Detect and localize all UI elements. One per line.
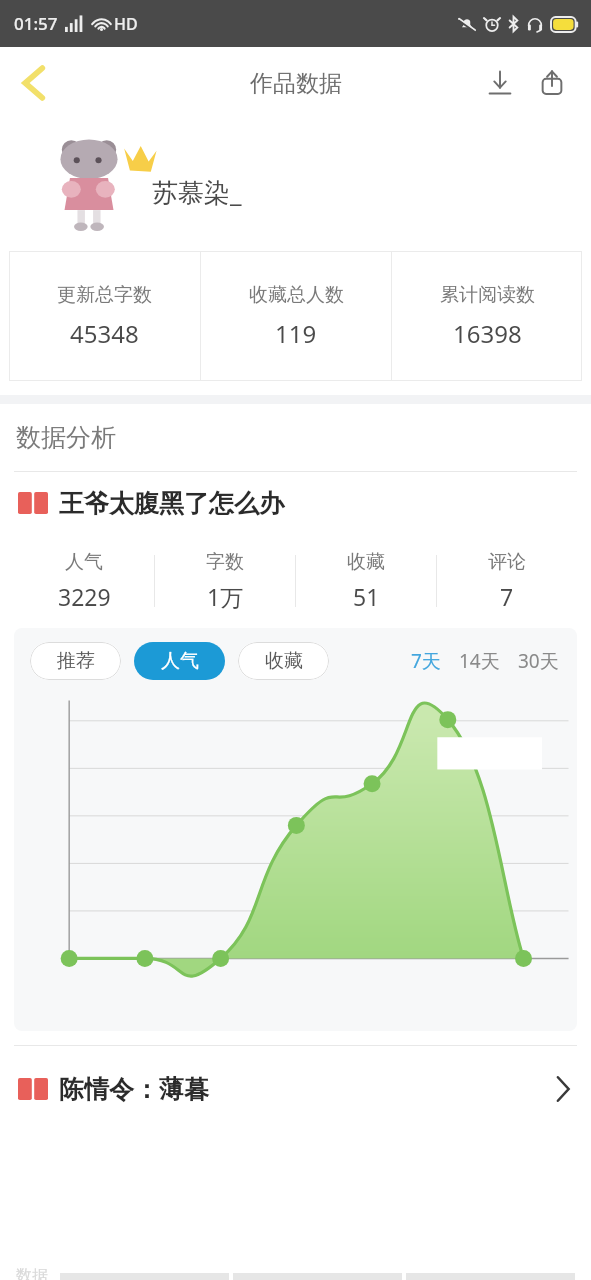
staticText: 7天 [411, 648, 441, 674]
staticText: 51 [353, 581, 380, 612]
staticText: 收藏总人数 [249, 283, 344, 307]
staticText: 7 [500, 581, 514, 612]
staticText: 30天 [518, 648, 559, 674]
staticText: 3229 [58, 581, 111, 612]
staticText: 陈情令：薄暮 [59, 1074, 209, 1105]
staticText: HD [114, 13, 138, 35]
staticText: 字数 [206, 550, 244, 574]
button[interactable]: 推荐 [30, 642, 121, 680]
button[interactable]: 字数 [155, 534, 295, 628]
staticText: 人气 [161, 649, 199, 673]
button[interactable]: 收藏总人数 [201, 251, 391, 381]
button[interactable]: 14天 [457, 642, 502, 680]
button[interactable]: 收藏 [296, 534, 436, 628]
staticText: 收藏 [265, 649, 303, 673]
button[interactable]: Download [477, 60, 523, 106]
staticText: 苏慕染_ [152, 174, 242, 210]
staticText: 收藏 [347, 550, 385, 574]
staticText: 45348 [70, 317, 139, 350]
staticText: 作品数据 [250, 69, 342, 98]
staticText: 人气 [65, 550, 103, 574]
staticText: 累计阅读数 [440, 283, 535, 307]
staticText: 评论 [488, 550, 526, 574]
staticText: 王爷太腹黑了怎么办 [59, 488, 284, 519]
staticText: 更新总字数 [57, 283, 152, 307]
staticText: 数据分析 [16, 422, 116, 453]
button[interactable]: 更新总字数 [9, 251, 200, 381]
button[interactable]: 累计阅读数 [392, 251, 582, 381]
staticText: 16398 [453, 317, 522, 350]
button[interactable]: 陈情令：薄暮 [0, 1046, 591, 1132]
button[interactable]: 收藏 [238, 642, 329, 680]
button[interactable]: 王爷太腹黑了怎么办 [0, 472, 591, 534]
button[interactable]: Share [529, 60, 575, 106]
button[interactable]: Back [6, 55, 62, 111]
staticText: 1万 [207, 581, 244, 612]
staticText: 119 [275, 317, 317, 350]
staticText: 14天 [459, 648, 500, 674]
staticText: 数据 [16, 1266, 48, 1280]
button[interactable]: 人气 [134, 642, 225, 680]
button[interactable]: 7天 [409, 642, 443, 680]
button[interactable]: 评论 [437, 534, 577, 628]
staticText: 推荐 [57, 649, 95, 673]
staticText: 01:57 [14, 12, 58, 35]
button[interactable]: 30天 [516, 642, 561, 680]
button[interactable]: 人气 [14, 534, 154, 628]
